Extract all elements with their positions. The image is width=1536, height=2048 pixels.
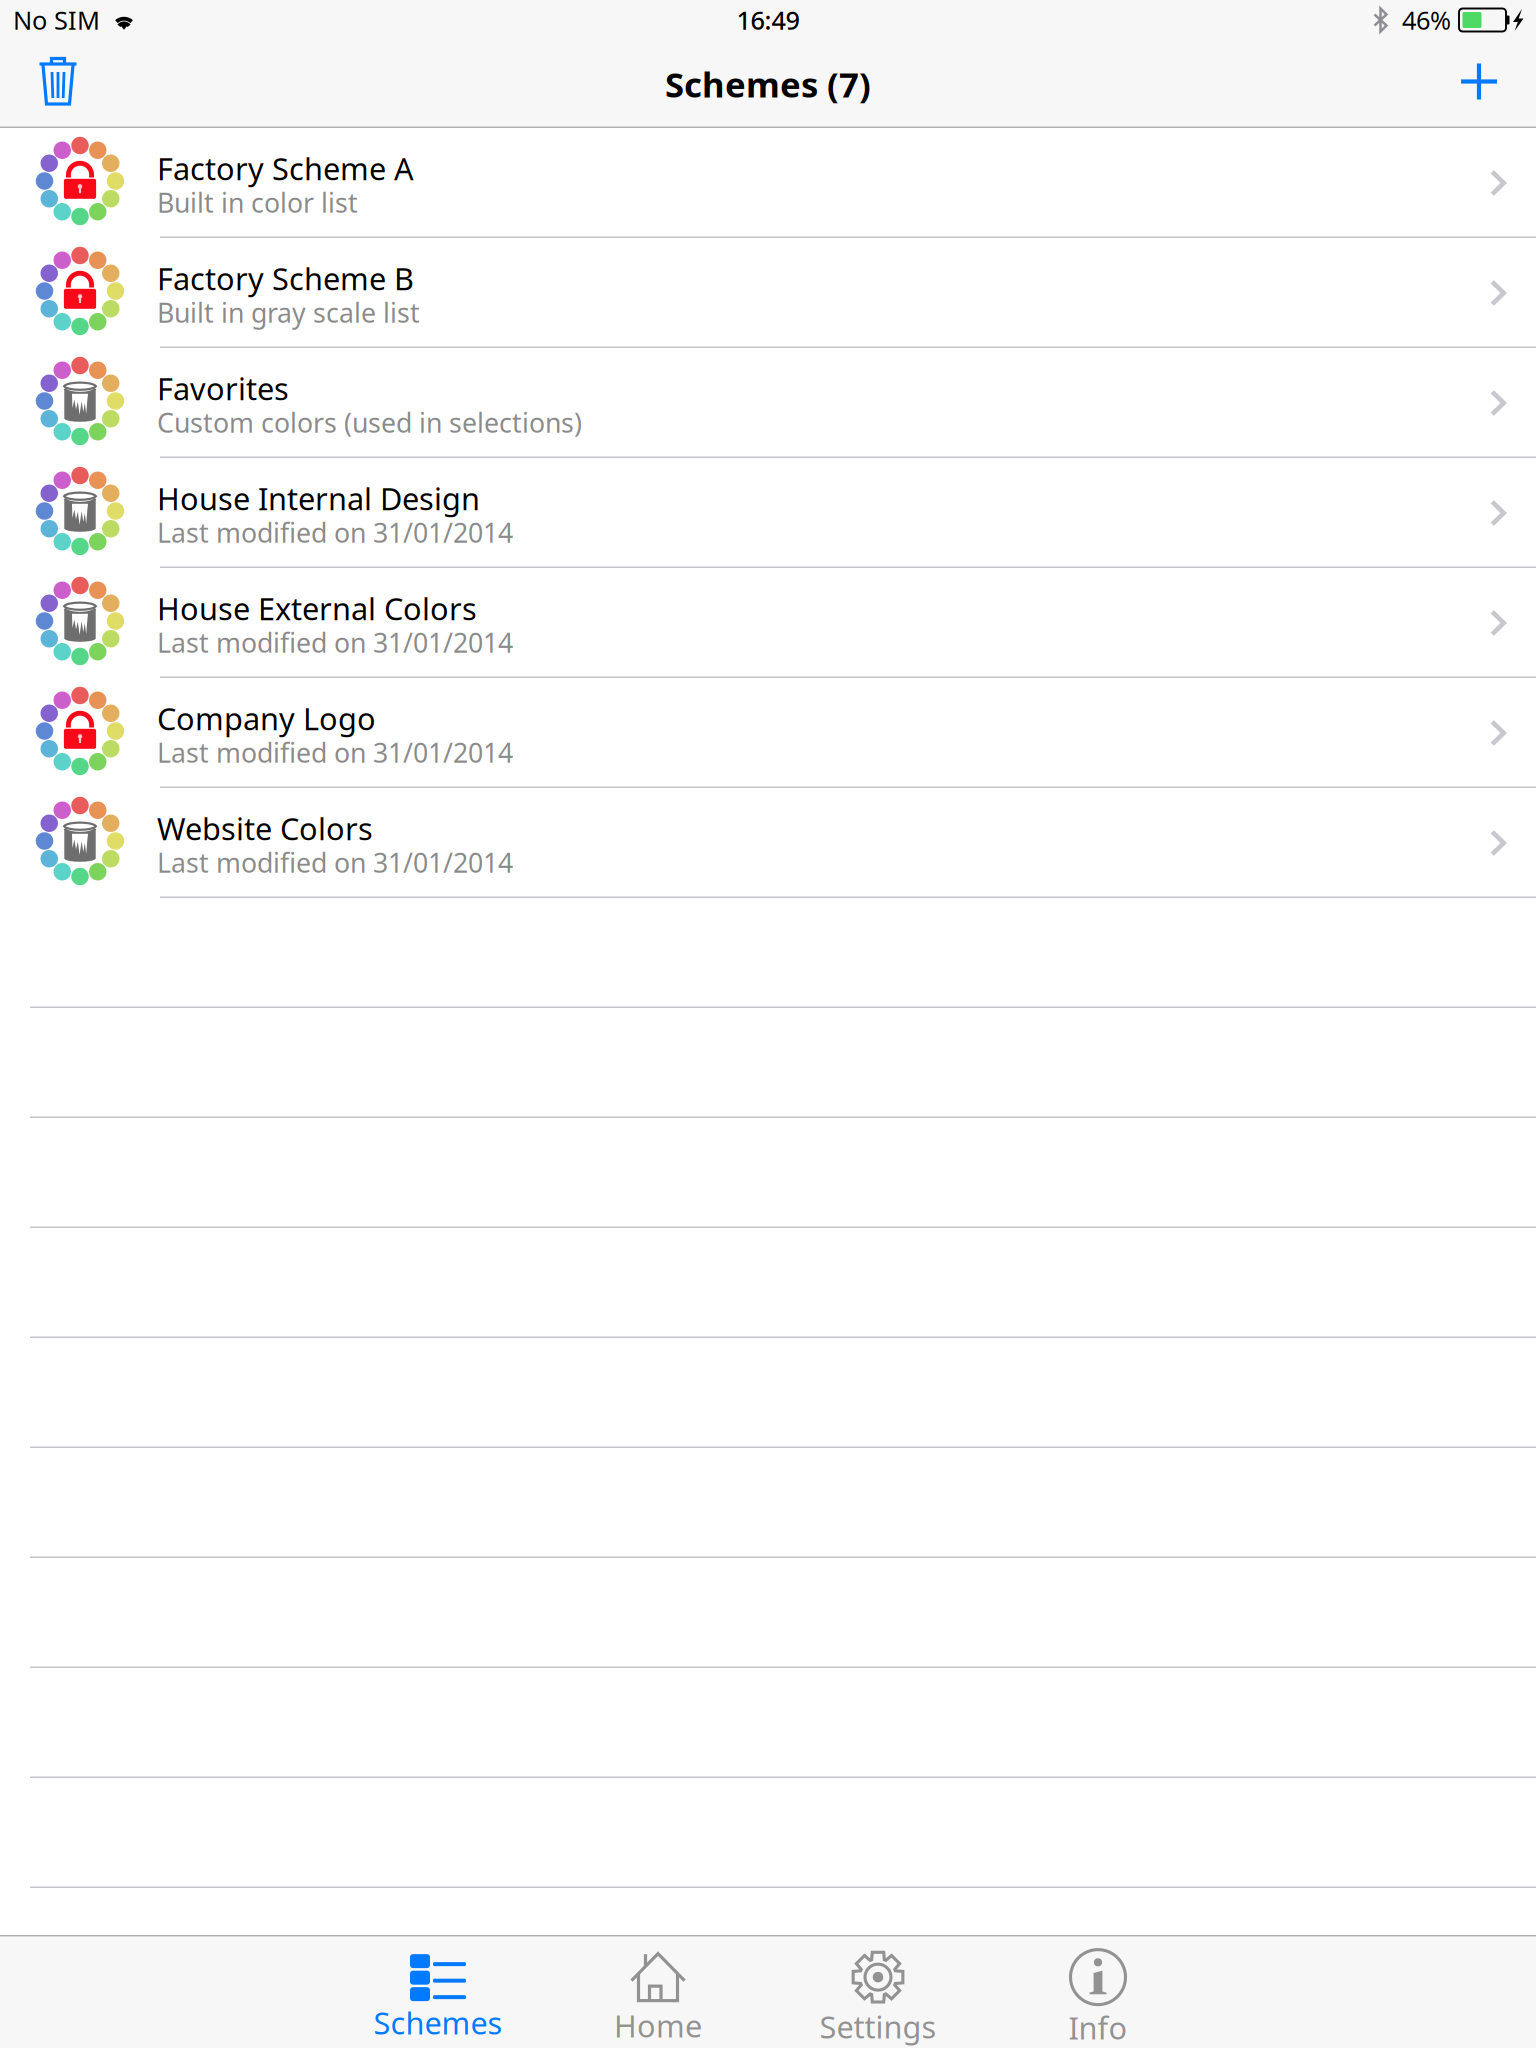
staticText: Last modified on 31/01/2014 bbox=[157, 625, 513, 660]
staticText: Website Colors bbox=[157, 808, 373, 849]
staticText: Home bbox=[614, 2005, 702, 2046]
button[interactable]: Website Colors bbox=[0, 788, 1536, 898]
staticText: Favorites bbox=[157, 368, 289, 409]
button[interactable]: Factory Scheme B bbox=[0, 238, 1536, 348]
button[interactable]: Home bbox=[548, 1935, 768, 2048]
staticText: 16:49 bbox=[736, 3, 799, 37]
staticText: Factory Scheme A bbox=[157, 148, 414, 189]
button[interactable]: Settings bbox=[768, 1935, 988, 2048]
staticText: Built in gray scale list bbox=[157, 295, 420, 330]
staticText: No SIM bbox=[13, 3, 100, 37]
button[interactable]: Add bbox=[1437, 44, 1517, 124]
staticText: Settings bbox=[819, 2006, 936, 2047]
button[interactable]: Info bbox=[988, 1935, 1208, 2048]
button[interactable]: Schemes bbox=[328, 1935, 548, 2048]
staticText: 46% bbox=[1402, 3, 1451, 37]
button[interactable]: House Internal Design bbox=[0, 458, 1536, 568]
staticText: House Internal Design bbox=[157, 478, 480, 519]
staticText: Schemes bbox=[373, 2002, 502, 2043]
staticText: Built in color list bbox=[157, 185, 358, 220]
button[interactable]: Delete bbox=[19, 44, 97, 124]
staticText: House External Colors bbox=[157, 588, 477, 629]
staticText: Company Logo bbox=[157, 698, 376, 739]
button[interactable]: Favorites bbox=[0, 348, 1536, 458]
staticText: Schemes (7) bbox=[665, 61, 871, 107]
staticText: Info bbox=[1068, 2007, 1127, 2048]
staticText: Last modified on 31/01/2014 bbox=[157, 515, 513, 550]
staticText: Factory Scheme B bbox=[157, 258, 414, 299]
button[interactable]: Factory Scheme A bbox=[0, 128, 1536, 238]
button[interactable]: Company Logo bbox=[0, 678, 1536, 788]
staticText: Custom colors (used in selections) bbox=[157, 405, 582, 440]
button[interactable]: House External Colors bbox=[0, 568, 1536, 678]
staticText: Last modified on 31/01/2014 bbox=[157, 845, 513, 880]
staticText: Last modified on 31/01/2014 bbox=[157, 735, 513, 770]
